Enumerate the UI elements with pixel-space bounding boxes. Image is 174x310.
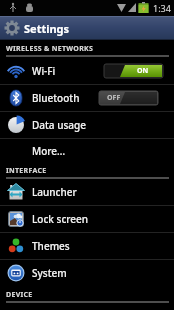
button[interactable]: OFF [99, 91, 158, 105]
staticText: Lock screen [32, 212, 89, 226]
staticText: Settings [24, 21, 70, 36]
staticText: 1:34 [153, 2, 171, 14]
staticText: Data usage [32, 118, 86, 132]
staticText: More… [32, 144, 66, 158]
button[interactable]: Themes [0, 233, 174, 259]
staticText: Themes [32, 239, 70, 253]
staticText: Launcher [32, 185, 77, 199]
button[interactable]: Data usage [0, 112, 174, 138]
staticText: INTERFACE [6, 166, 47, 176]
staticText: System [32, 266, 67, 280]
button[interactable]: ON [104, 64, 163, 78]
button[interactable]: Launcher [0, 179, 174, 205]
staticText: Bluetooth [32, 91, 80, 105]
staticText: WIRELESS & NETWORKS [6, 44, 94, 54]
button[interactable]: Wi-Fi [0, 57, 174, 84]
staticText: ON [137, 66, 149, 76]
button[interactable]: Bluetooth [0, 85, 174, 111]
staticText: OFF [107, 93, 121, 103]
button[interactable]: Lock screen [0, 206, 174, 232]
button[interactable]: More… [0, 139, 174, 162]
staticText: DEVICE [6, 290, 33, 300]
button[interactable]: Settings [0, 16, 174, 40]
button[interactable]: System [0, 260, 174, 286]
staticText: Wi-Fi [32, 64, 56, 78]
